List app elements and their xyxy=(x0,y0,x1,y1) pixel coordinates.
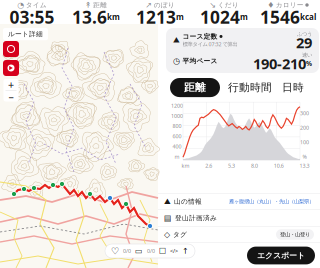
staticText: 10.6 xyxy=(274,162,284,169)
staticText: ◔ xyxy=(17,0,24,10)
staticText: 8.0 xyxy=(251,162,258,169)
staticText: 距離 xyxy=(184,81,206,94)
button[interactable]: 距離 xyxy=(170,78,220,97)
staticText: エクスポート xyxy=(257,251,305,260)
staticText: 600 xyxy=(172,133,181,140)
button[interactable]: コメント xyxy=(135,246,143,256)
staticText: ⛰ xyxy=(164,198,171,205)
staticText: 300 xyxy=(300,109,309,117)
staticText: 03:55 xyxy=(9,5,54,28)
staticText: 1200 xyxy=(171,102,183,109)
staticText: 山の情報 xyxy=(174,197,202,206)
staticText: ↟ xyxy=(85,0,92,10)
staticText: くだり xyxy=(218,1,239,9)
staticText: 29 xyxy=(296,33,312,52)
staticText: 雁ヶ腹摺山（丸山）・先山（山梨県） xyxy=(229,198,314,205)
staticText: km xyxy=(107,12,120,22)
staticText: 100 xyxy=(300,138,309,146)
staticText: 190-210 xyxy=(253,54,306,73)
staticText: ♦ xyxy=(267,0,274,10)
staticText: m xyxy=(240,12,248,22)
staticText: 日時 xyxy=(282,81,304,94)
button[interactable]: 縮小 xyxy=(3,90,18,101)
staticText: % xyxy=(306,59,312,68)
button[interactable]: 再生 xyxy=(3,60,19,76)
button[interactable]: エクスポート xyxy=(247,247,315,264)
button[interactable]: 現在地 xyxy=(3,41,19,57)
staticText: ◇ xyxy=(164,230,170,239)
staticText: 登山計画済み xyxy=(175,214,217,222)
staticText: ↗ xyxy=(145,0,152,10)
staticText: </> xyxy=(170,247,178,255)
button[interactable]: ルート詳細 xyxy=(3,28,48,40)
staticText: ルート詳細 xyxy=(8,30,43,38)
button[interactable]: ▤ xyxy=(164,210,314,226)
button[interactable]: いいね xyxy=(111,246,119,256)
staticText: ♡ xyxy=(111,246,119,256)
staticText: 800 xyxy=(172,122,181,130)
staticText: m xyxy=(176,12,184,22)
staticText: ↘ xyxy=(209,0,216,10)
staticText: タグ xyxy=(173,230,187,239)
staticText: m xyxy=(174,153,179,160)
button[interactable]: 拡大 xyxy=(3,79,18,90)
button[interactable]: ⛰ xyxy=(164,193,314,209)
button[interactable]: 行動時間 xyxy=(226,78,274,97)
staticText: 0/0 xyxy=(147,247,155,255)
staticText: 13.3 xyxy=(299,162,309,169)
staticText: 2.6 xyxy=(205,162,212,169)
staticText: ↑ xyxy=(182,246,189,256)
staticText: 1213 xyxy=(136,5,176,28)
staticText: タイム xyxy=(26,1,47,9)
staticText: コース定数 xyxy=(182,32,217,41)
staticText: 登山・山登り xyxy=(280,231,310,238)
button[interactable]: ◇ xyxy=(164,226,314,242)
staticText: kcal xyxy=(300,12,316,22)
staticText: 標準タイム 07:32 で算出 xyxy=(182,41,237,48)
staticText: のぼり xyxy=(154,1,175,9)
staticText: 1000 xyxy=(171,112,183,119)
staticText: ◷ xyxy=(173,56,180,66)
staticText: カロリー xyxy=(276,1,304,9)
staticText: km xyxy=(181,162,189,169)
staticText: 5.3 xyxy=(228,162,235,169)
staticText: 0/0 xyxy=(123,247,131,255)
button[interactable]: 埋め込み xyxy=(170,247,178,255)
staticText: ⛰ xyxy=(173,36,180,44)
staticText: 13.6 xyxy=(72,5,107,28)
button[interactable]: 日時 xyxy=(280,78,306,97)
staticText: ▭ xyxy=(135,246,143,256)
staticText: 1546 xyxy=(260,5,300,28)
staticText: 平均ペース xyxy=(182,57,217,65)
staticText: – xyxy=(8,89,13,103)
staticText: ☐ xyxy=(159,246,166,256)
staticText: 距離 xyxy=(93,1,107,9)
staticText: 200 xyxy=(300,124,309,131)
staticText: ▤ xyxy=(164,213,172,223)
staticText: 1024 xyxy=(200,5,240,28)
staticText: + xyxy=(8,77,14,92)
staticText: 行動時間 xyxy=(228,81,272,94)
staticText: 速い xyxy=(302,52,312,58)
staticText: ふつう xyxy=(297,31,312,37)
button[interactable]: 共有 xyxy=(182,246,189,256)
staticText: % xyxy=(302,153,306,160)
staticText: 400 xyxy=(172,143,181,150)
button[interactable]: 保存 xyxy=(159,246,166,256)
